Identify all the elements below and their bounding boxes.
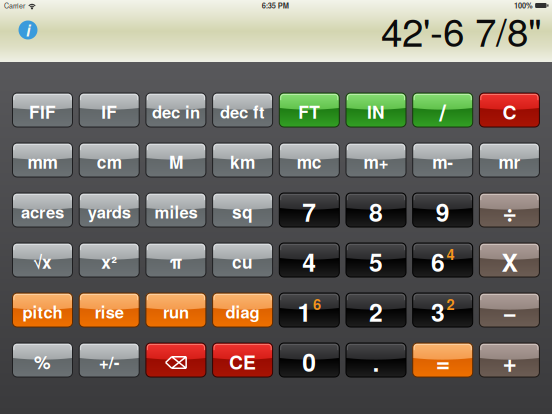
staticText: + bbox=[502, 344, 516, 379]
button[interactable]: 5 bbox=[346, 243, 406, 277]
staticText: cu bbox=[232, 249, 253, 274]
button[interactable]: +/- bbox=[79, 343, 139, 377]
button[interactable]: C bbox=[479, 93, 539, 127]
button[interactable]: 7 bbox=[279, 193, 339, 227]
staticText: CE bbox=[229, 348, 256, 375]
staticText: rise bbox=[95, 300, 124, 324]
staticText: 6 bbox=[313, 294, 321, 315]
staticText: mr bbox=[498, 149, 520, 174]
button[interactable]: 9 bbox=[413, 193, 473, 227]
button[interactable]: √x bbox=[12, 243, 72, 277]
staticText: ÷ bbox=[502, 194, 516, 229]
button[interactable]: IF bbox=[79, 93, 139, 127]
staticText: π bbox=[169, 249, 182, 274]
button[interactable]: 0 bbox=[279, 343, 339, 377]
staticText: x² bbox=[101, 249, 117, 274]
staticText: mc bbox=[297, 149, 322, 174]
button[interactable]: / bbox=[413, 93, 473, 127]
button[interactable]: 8 bbox=[346, 193, 406, 227]
button[interactable]: cu bbox=[213, 243, 273, 277]
button[interactable]: m+ bbox=[346, 143, 406, 177]
button[interactable]: x² bbox=[79, 243, 139, 277]
button[interactable]: M bbox=[146, 143, 206, 177]
button[interactable]: X bbox=[479, 243, 539, 277]
staticText: diag bbox=[226, 300, 260, 324]
button[interactable]: % bbox=[12, 343, 72, 377]
button[interactable]: FT bbox=[279, 93, 339, 127]
staticText: 8 bbox=[369, 194, 383, 229]
staticText: dec ft bbox=[220, 100, 265, 124]
staticText: miles bbox=[154, 200, 197, 224]
button[interactable]: . bbox=[346, 343, 406, 377]
staticText: mm bbox=[27, 149, 57, 174]
staticText: 1 bbox=[298, 294, 312, 329]
staticText: cm bbox=[97, 149, 122, 174]
staticText: 4 bbox=[302, 244, 316, 279]
staticText: pitch bbox=[22, 300, 62, 324]
staticText: 4 bbox=[446, 244, 454, 265]
button[interactable]: sq bbox=[213, 193, 273, 227]
staticText: % bbox=[34, 348, 51, 375]
staticText: FIF bbox=[29, 99, 56, 124]
staticText: 0 bbox=[302, 344, 316, 379]
button[interactable]: CE bbox=[213, 343, 273, 377]
staticText: +/- bbox=[99, 349, 120, 374]
staticText: run bbox=[163, 300, 189, 324]
button[interactable]: Info bbox=[13, 18, 43, 42]
button[interactable]: dec in bbox=[146, 93, 206, 127]
button[interactable] bbox=[146, 343, 206, 377]
staticText: acres bbox=[21, 200, 64, 224]
button[interactable]: mr bbox=[479, 143, 539, 177]
button[interactable]: diag bbox=[213, 293, 273, 327]
staticText: √x bbox=[33, 249, 52, 274]
staticText: IF bbox=[101, 99, 117, 124]
button[interactable]: 3 bbox=[413, 293, 473, 327]
button[interactable]: yards bbox=[79, 193, 139, 227]
staticText: . bbox=[372, 344, 379, 379]
staticText: 100% bbox=[514, 0, 533, 11]
button[interactable]: 2 bbox=[346, 293, 406, 327]
staticText: 2 bbox=[369, 294, 383, 329]
button[interactable]: miles bbox=[146, 193, 206, 227]
button[interactable]: ÷ bbox=[479, 193, 539, 227]
button[interactable]: π bbox=[146, 243, 206, 277]
button[interactable]: + bbox=[479, 343, 539, 377]
button[interactable]: mm bbox=[12, 143, 72, 177]
staticText: 7 bbox=[302, 194, 316, 229]
staticText: 3 bbox=[431, 294, 445, 329]
staticText: X bbox=[501, 244, 517, 279]
button[interactable]: 4 bbox=[279, 243, 339, 277]
button[interactable]: acres bbox=[12, 193, 72, 227]
staticText: 6 bbox=[431, 244, 445, 279]
staticText: i bbox=[26, 19, 30, 41]
button[interactable]: 1 bbox=[279, 293, 339, 327]
button[interactable]: m- bbox=[413, 143, 473, 177]
button[interactable]: = bbox=[413, 343, 473, 377]
staticText: Carrier bbox=[4, 0, 25, 10]
button[interactable]: IN bbox=[346, 93, 406, 127]
button[interactable]: FIF bbox=[12, 93, 72, 127]
button[interactable]: cm bbox=[79, 143, 139, 177]
staticText: km bbox=[230, 149, 255, 174]
staticText: 5 bbox=[369, 244, 383, 279]
staticText: − bbox=[502, 294, 516, 329]
staticText: m+ bbox=[363, 149, 388, 174]
button[interactable]: run bbox=[146, 293, 206, 327]
button[interactable]: 6 bbox=[413, 243, 473, 277]
staticText: 6:35 PM bbox=[262, 0, 289, 11]
button[interactable]: − bbox=[479, 293, 539, 327]
staticText: yards bbox=[88, 200, 131, 224]
staticText: m- bbox=[432, 149, 453, 174]
staticText: 42'-6 7/8" bbox=[381, 2, 542, 58]
button[interactable]: rise bbox=[79, 293, 139, 327]
staticText: FT bbox=[298, 99, 320, 124]
staticText: C bbox=[502, 98, 516, 125]
staticText: / bbox=[439, 94, 446, 129]
staticText: = bbox=[436, 344, 450, 379]
button[interactable]: km bbox=[213, 143, 273, 177]
button[interactable]: dec ft bbox=[213, 93, 273, 127]
button[interactable]: mc bbox=[279, 143, 339, 177]
staticText: sq bbox=[232, 199, 253, 224]
button[interactable]: pitch bbox=[12, 293, 72, 327]
staticText: dec in bbox=[152, 100, 200, 124]
